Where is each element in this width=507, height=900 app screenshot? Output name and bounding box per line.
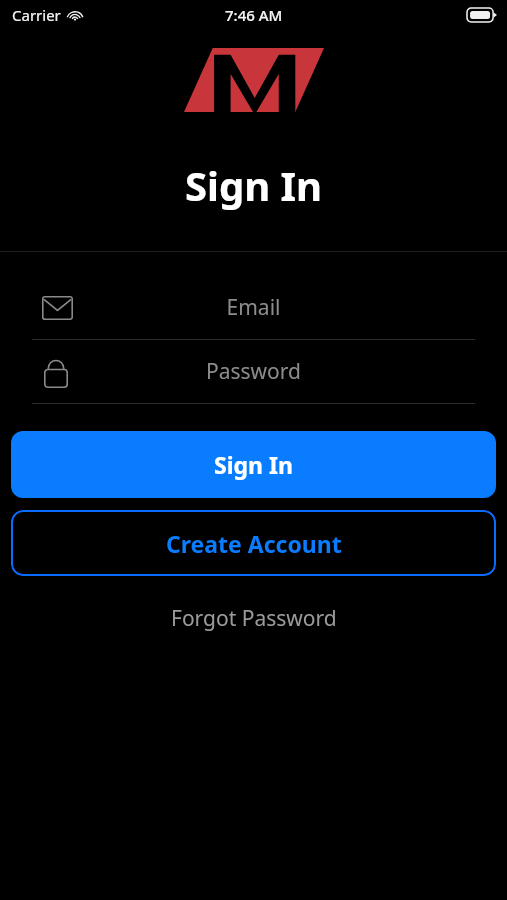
staticText: Carrier <box>12 5 61 25</box>
button[interactable]: Forgot Password <box>0 596 507 641</box>
staticText: Forgot Password <box>171 604 337 633</box>
button[interactable]: Create Account <box>11 510 496 576</box>
other: Email <box>42 296 73 320</box>
staticText: Sign In <box>214 449 293 480</box>
staticText: 7:46 AM <box>225 5 283 25</box>
staticText: Email <box>0 293 507 322</box>
staticText: Password <box>0 357 507 386</box>
staticText: Sign In <box>0 158 507 212</box>
staticText: Create Account <box>166 528 342 559</box>
button[interactable]: Email <box>0 276 507 340</box>
other: Password <box>42 356 70 388</box>
button[interactable]: Sign In <box>11 431 496 498</box>
button[interactable]: Password <box>0 340 507 404</box>
